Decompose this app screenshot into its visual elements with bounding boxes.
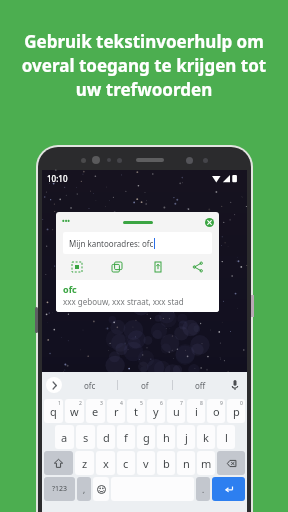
button[interactable]: of bbox=[118, 372, 172, 398]
staticText: 2 bbox=[79, 400, 82, 407]
staticText: n bbox=[183, 456, 190, 471]
button[interactable]: Sluiten bbox=[205, 218, 214, 227]
button[interactable]: , bbox=[77, 477, 91, 501]
staticText: Gebruik tekstinvoerhulp om overal toegan… bbox=[12, 30, 276, 101]
staticText: ••• bbox=[62, 217, 70, 227]
button[interactable]: g bbox=[137, 425, 155, 449]
staticText: q bbox=[50, 404, 57, 419]
staticText: g bbox=[143, 430, 150, 445]
staticText: h bbox=[163, 430, 170, 445]
button[interactable]: Meer bbox=[46, 377, 62, 393]
button[interactable]: ?123 bbox=[44, 477, 75, 501]
button[interactable]: d bbox=[97, 425, 115, 449]
button[interactable]: b bbox=[157, 451, 175, 475]
staticText: v bbox=[143, 456, 149, 471]
staticText: 6 bbox=[160, 400, 163, 407]
button[interactable]: c bbox=[117, 451, 135, 475]
button[interactable]: m bbox=[197, 451, 215, 475]
button[interactable]: Emoji bbox=[93, 477, 109, 501]
staticText: , bbox=[83, 484, 86, 495]
staticText: j bbox=[185, 430, 188, 445]
staticText: l bbox=[225, 430, 228, 445]
button[interactable]: z bbox=[75, 451, 94, 475]
staticText: b bbox=[163, 456, 170, 471]
button[interactable]: Delen bbox=[189, 258, 207, 276]
staticText: ofc bbox=[142, 238, 154, 249]
staticText: ofc bbox=[63, 283, 77, 295]
staticText: 1 bbox=[58, 400, 61, 407]
staticText: Mijn kantooradres: bbox=[69, 238, 142, 249]
staticText: m bbox=[201, 456, 212, 471]
button[interactable]: y bbox=[147, 399, 165, 423]
staticText: of bbox=[141, 380, 149, 391]
staticText: z bbox=[82, 456, 88, 471]
staticText: c bbox=[123, 456, 129, 471]
button[interactable]: Shift bbox=[44, 451, 73, 475]
button[interactable]: n bbox=[177, 451, 195, 475]
button[interactable]: ofc bbox=[62, 372, 117, 398]
button[interactable]: u bbox=[167, 399, 185, 423]
staticText: ?123 bbox=[52, 484, 68, 494]
staticText: e bbox=[92, 404, 99, 419]
staticText: a bbox=[61, 430, 68, 445]
staticText: xxx gebouw, xxx straat, xxx stad bbox=[63, 296, 184, 307]
button[interactable]: h bbox=[157, 425, 175, 449]
staticText: u bbox=[173, 404, 180, 419]
button[interactable]: l bbox=[217, 425, 235, 449]
button[interactable]: p bbox=[227, 399, 245, 423]
staticText: 8 bbox=[200, 400, 203, 407]
button[interactable]: w bbox=[65, 399, 84, 423]
staticText: off bbox=[195, 380, 206, 391]
button[interactable]: e bbox=[86, 399, 105, 423]
staticText: 3 bbox=[100, 400, 103, 407]
button[interactable]: Backspace bbox=[217, 451, 245, 475]
button[interactable]: Kopiëren bbox=[108, 258, 126, 276]
staticText: s bbox=[83, 430, 89, 445]
button[interactable]: j bbox=[177, 425, 195, 449]
button[interactable]: Selecteren bbox=[68, 258, 86, 276]
staticText: k bbox=[203, 430, 209, 445]
staticText: . bbox=[202, 484, 205, 495]
button[interactable]: x bbox=[96, 451, 115, 475]
staticText: 4 bbox=[120, 400, 123, 407]
button[interactable]: q bbox=[44, 399, 63, 423]
button[interactable]: t bbox=[127, 399, 145, 423]
staticText: 9 bbox=[220, 400, 223, 407]
staticText: 7 bbox=[180, 400, 183, 407]
button[interactable]: Mijn kantooradres: bbox=[63, 232, 212, 254]
staticText: ofc bbox=[84, 380, 96, 391]
staticText: y bbox=[153, 404, 159, 419]
button[interactable]: i bbox=[187, 399, 205, 423]
staticText: p bbox=[233, 404, 240, 419]
staticText: 10:10 bbox=[47, 173, 68, 184]
button[interactable]: f bbox=[117, 425, 135, 449]
staticText: d bbox=[103, 430, 110, 445]
staticText: o bbox=[213, 404, 220, 419]
button[interactable]: Spraakinvoer bbox=[227, 372, 243, 398]
button[interactable]: Enter bbox=[212, 477, 245, 501]
button[interactable]: . bbox=[196, 477, 210, 501]
button[interactable]: off bbox=[173, 372, 227, 398]
button[interactable]: a bbox=[55, 425, 74, 449]
staticText: i bbox=[195, 404, 198, 419]
staticText: 0 bbox=[240, 400, 243, 407]
staticText: w bbox=[70, 404, 79, 419]
button[interactable]: v bbox=[137, 451, 155, 475]
staticText: 5 bbox=[140, 400, 143, 407]
button[interactable]: ofc bbox=[56, 280, 219, 312]
staticText: r bbox=[114, 404, 119, 419]
button[interactable]: s bbox=[76, 425, 95, 449]
button[interactable]: k bbox=[197, 425, 215, 449]
staticText: t bbox=[134, 404, 138, 419]
button[interactable]: r bbox=[107, 399, 125, 423]
button[interactable]: Invoegen bbox=[149, 258, 167, 276]
staticText: f bbox=[124, 430, 128, 445]
button[interactable]: o bbox=[207, 399, 225, 423]
staticText: x bbox=[103, 456, 109, 471]
